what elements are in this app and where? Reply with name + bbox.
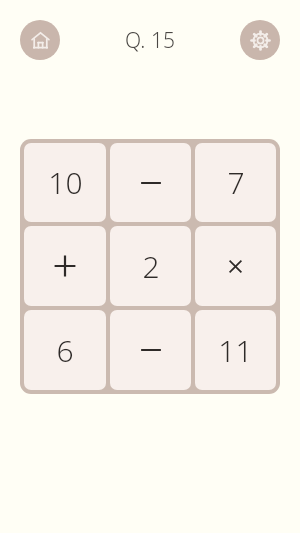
staticText: 10 [48, 162, 83, 203]
button[interactable]: 6 [24, 310, 106, 390]
button[interactable] [195, 226, 276, 306]
staticText: Q. 15 [125, 26, 175, 55]
button[interactable]: 10 [24, 143, 106, 222]
button[interactable] [24, 226, 106, 306]
button[interactable]: 7 [195, 143, 276, 222]
button[interactable] [110, 143, 191, 222]
staticText: 7 [227, 162, 245, 203]
staticText: 6 [56, 330, 74, 371]
button[interactable]: 2 [110, 226, 191, 306]
button[interactable]: Home [20, 20, 60, 60]
button[interactable] [110, 310, 191, 390]
button[interactable]: 11 [195, 310, 276, 390]
staticText: 11 [218, 330, 253, 371]
button[interactable]: Settings [240, 20, 280, 60]
staticText: 2 [142, 246, 160, 287]
